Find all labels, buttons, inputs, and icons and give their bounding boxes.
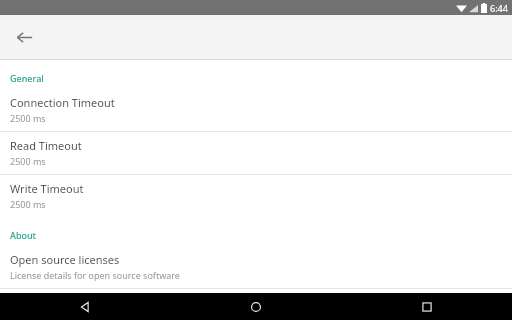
staticText: 2500 ms [10, 112, 46, 124]
staticText: 2500 ms [10, 198, 46, 210]
button[interactable]: Back [0, 293, 170, 320]
staticText: Write Timeout [10, 181, 84, 196]
button[interactable]: Back [8, 21, 40, 53]
button[interactable]: Write Timeout [0, 175, 512, 217]
button[interactable]: Open source licenses [0, 246, 512, 288]
staticText: 6:44 [490, 2, 508, 14]
staticText: Read Timeout [10, 138, 82, 153]
staticText: 2500 ms [10, 155, 46, 167]
staticText: About [10, 229, 37, 241]
staticText: Open source licenses [10, 252, 120, 267]
staticText: General [10, 72, 44, 84]
staticText: License details for open source software [10, 269, 180, 281]
button[interactable]: Home [170, 293, 341, 320]
button[interactable]: Connection Timeout [0, 89, 512, 131]
staticText: Connection Timeout [10, 95, 115, 110]
button[interactable]: Recent apps [341, 293, 512, 320]
button[interactable]: Read Timeout [0, 132, 512, 174]
